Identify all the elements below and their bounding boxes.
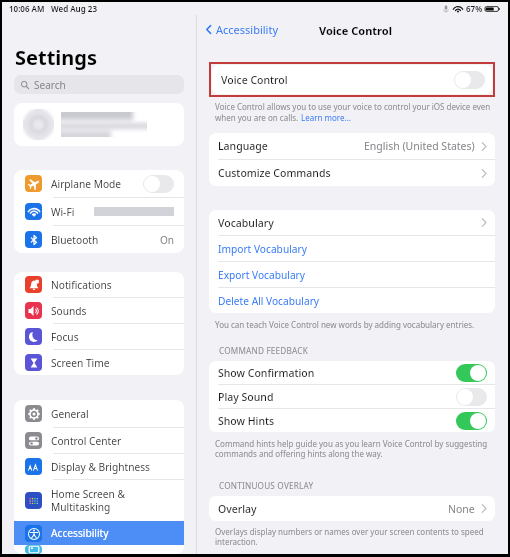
staticText: Accessibility: [216, 22, 279, 37]
button[interactable]: Accessibility: [14, 521, 184, 545]
staticText: Language: [218, 139, 268, 153]
button[interactable]: General: [14, 400, 184, 427]
staticText: Sounds: [51, 304, 87, 318]
staticText: Customize Commands: [218, 166, 331, 180]
staticText: You can teach Voice Control new words by…: [215, 319, 475, 330]
button[interactable]: Sounds: [14, 298, 184, 323]
staticText: Accessibility: [51, 526, 109, 540]
button[interactable]: Export Vocabulary: [209, 262, 495, 287]
staticText: Voice Control: [319, 23, 392, 38]
staticText: General: [51, 407, 89, 421]
staticText: Screen Time: [51, 356, 110, 370]
staticText: Overlay: [218, 502, 257, 516]
staticText: Bluetooth: [51, 233, 99, 247]
staticText: 10:06 AM: [9, 3, 45, 14]
button[interactable]: Home Screen & Multitasking: [14, 480, 184, 521]
button[interactable]: Notifications: [14, 272, 184, 297]
button[interactable]: Language: [209, 133, 495, 159]
button[interactable]: Focus: [14, 324, 184, 349]
button[interactable]: Overlay: [209, 496, 495, 521]
button[interactable]: Screen Time: [14, 350, 184, 375]
staticText: None: [448, 502, 475, 516]
staticText: when you are on calls.: [215, 112, 301, 123]
button[interactable]: Toggle on: [456, 364, 487, 382]
staticText: Wi-Fi: [51, 205, 75, 219]
staticText: Airplane Mode: [51, 177, 122, 191]
staticText: Export Vocabulary: [218, 268, 306, 282]
staticText: On: [160, 233, 174, 247]
staticText: Control Center: [51, 434, 122, 448]
staticText: Play Sound: [218, 390, 274, 404]
staticText: Command hints help guide you as you lear…: [215, 438, 488, 460]
button[interactable]: Toggle off: [454, 71, 485, 89]
staticText: Import Vocabulary: [218, 242, 307, 256]
button[interactable]: Import Vocabulary: [209, 236, 495, 261]
button[interactable]: Bluetooth: [14, 226, 184, 253]
staticText: COMMAND FEEDBACK: [219, 345, 308, 356]
button[interactable]: Accessibility: [205, 22, 279, 37]
button[interactable]: Airplane Mode: [14, 170, 184, 197]
staticText: Delete All Vocabulary: [218, 294, 320, 308]
button[interactable]: Delete All Vocabulary: [209, 288, 495, 313]
staticText: Overlays display numbers or names over y…: [215, 526, 484, 548]
button[interactable]: [14, 545, 184, 554]
button[interactable]: Play Sound: [209, 385, 495, 408]
button[interactable]: Toggle off: [143, 175, 174, 193]
button[interactable]: Show Hints: [209, 409, 495, 432]
staticText: Home Screen & Multitasking: [51, 487, 126, 514]
staticText: Wed Aug 23: [51, 3, 97, 14]
staticText: Show Confirmation: [218, 366, 315, 380]
button[interactable]: Learn more...: [301, 112, 351, 123]
button[interactable]: Show Confirmation: [209, 361, 495, 384]
staticText: 67%: [466, 3, 483, 14]
staticText: English (United States): [364, 139, 475, 153]
staticText: Display & Brightness: [51, 460, 151, 474]
button[interactable]: Voice Control: [212, 65, 492, 94]
staticText: Vocabulary: [218, 216, 274, 230]
staticText: Show Hints: [218, 414, 275, 428]
staticText: Focus: [51, 330, 79, 344]
button[interactable]: Toggle on: [456, 412, 487, 430]
button[interactable]: [14, 103, 184, 146]
button[interactable]: Display & Brightness: [14, 454, 184, 479]
button[interactable]: Customize Commands: [209, 160, 495, 186]
staticText: Search: [34, 78, 66, 92]
button[interactable]: Wi-Fi: [14, 198, 184, 225]
button[interactable]: Toggle off: [456, 388, 487, 406]
button[interactable]: Control Center: [14, 428, 184, 453]
staticText: Voice Control allows you to use your voi…: [215, 101, 491, 112]
staticText: Settings: [15, 44, 97, 71]
staticText: Voice Control: [221, 73, 288, 87]
staticText: CONTINUOUS OVERLAY: [219, 480, 314, 491]
button[interactable]: Vocabulary: [209, 210, 495, 235]
staticText: Notifications: [51, 278, 112, 292]
button[interactable]: Search: [14, 75, 184, 94]
